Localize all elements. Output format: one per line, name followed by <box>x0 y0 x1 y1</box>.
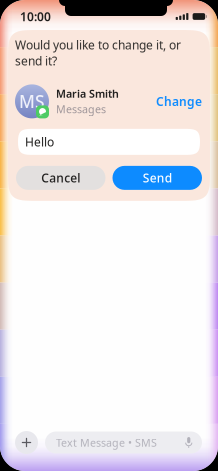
staticText: 10:00 <box>20 8 51 24</box>
staticText: Messages <box>56 102 106 116</box>
staticText: Cancel <box>41 170 80 186</box>
staticText: Maria Smith <box>56 86 119 101</box>
button[interactable]: Cancel <box>16 166 105 190</box>
staticText: Text Message • SMS <box>56 435 157 450</box>
button[interactable]: Change <box>153 87 205 115</box>
staticText: Change <box>156 93 202 109</box>
button[interactable]: Send <box>112 166 202 190</box>
staticText: MS <box>19 90 45 113</box>
staticText: Would you like to change it, or send it? <box>15 37 181 69</box>
button[interactable]: Add attachment <box>15 431 38 454</box>
staticText: Send <box>143 170 172 186</box>
staticText: Hello <box>25 134 54 150</box>
